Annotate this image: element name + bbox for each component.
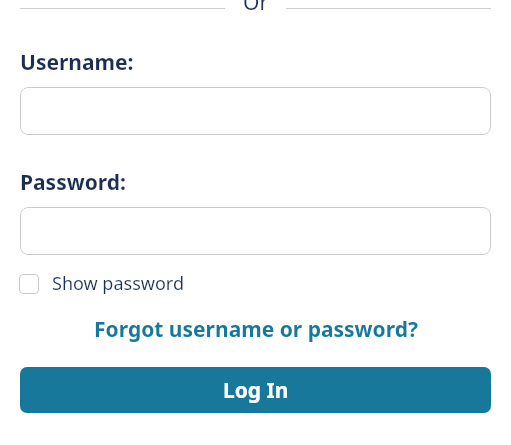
staticText: Username: <box>20 48 134 77</box>
button[interactable]: Show password <box>19 271 184 296</box>
staticText: Or <box>243 0 269 14</box>
staticText: Show password <box>52 271 184 296</box>
button[interactable]: Forgot username or password? <box>0 315 511 344</box>
button[interactable]: Text input field <box>20 87 491 135</box>
staticText: Forgot username or password? <box>94 315 418 344</box>
button[interactable]: Log In <box>20 367 491 413</box>
staticText: Log In <box>223 376 289 405</box>
staticText: Password: <box>20 168 126 197</box>
button[interactable]: Text input field <box>20 207 491 255</box>
